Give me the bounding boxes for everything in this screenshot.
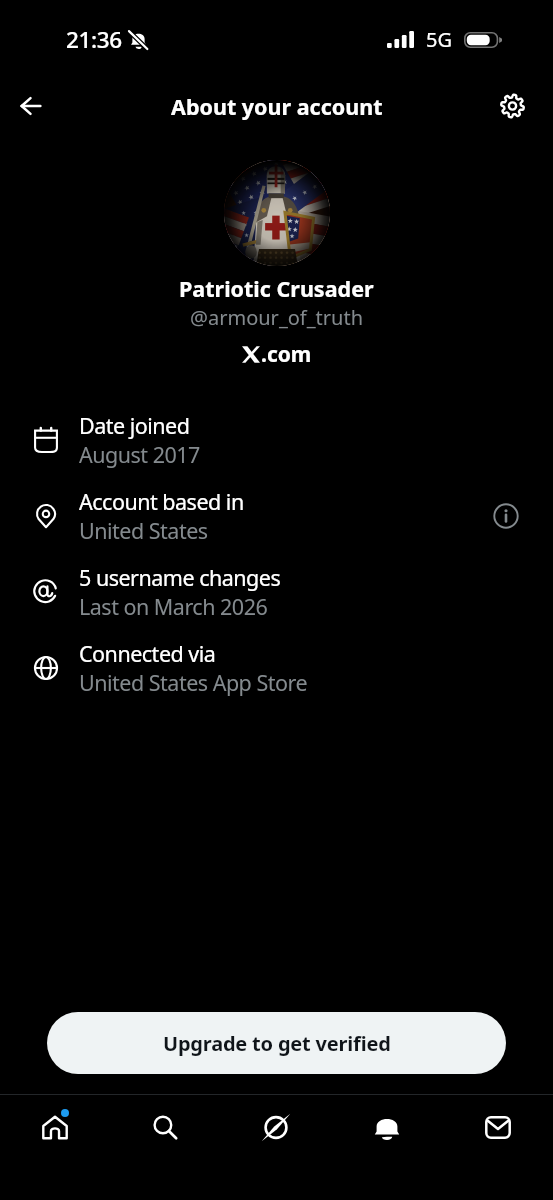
staticText: Patriotic Crusader: [179, 274, 374, 303]
button[interactable]: Upgrade to get verified: [47, 1012, 506, 1074]
button[interactable]: 5 username changes: [0, 563, 553, 639]
staticText: @armour_of_truth: [190, 304, 364, 331]
button[interactable]: Search: [110, 1098, 220, 1156]
button[interactable]: Home: [0, 1098, 110, 1156]
staticText: United States: [79, 516, 208, 545]
staticText: Date joined: [79, 411, 190, 440]
button[interactable]: Account based in: [0, 487, 553, 563]
button[interactable]: Grok: [220, 1098, 331, 1156]
staticText: Upgrade to get verified: [163, 1030, 391, 1057]
button[interactable]: Messages: [442, 1098, 553, 1156]
staticText: Last on March 2026: [79, 592, 268, 621]
button[interactable]: Settings: [489, 83, 535, 129]
staticText: Account based in: [79, 487, 244, 516]
staticText: .com: [261, 340, 312, 369]
staticText: 21:36: [66, 24, 122, 55]
button[interactable]: Back: [6, 82, 54, 130]
staticText: Connected via: [79, 639, 216, 668]
button[interactable]: Date joined: [0, 411, 553, 487]
button[interactable]: Connected via: [0, 639, 553, 715]
staticText: United States App Store: [79, 668, 308, 697]
staticText: 5G: [426, 26, 452, 53]
staticText: August 2017: [79, 440, 200, 469]
button[interactable]: More info: [486, 496, 526, 536]
staticText: 5 username changes: [79, 563, 281, 592]
staticText: About your account: [171, 92, 383, 121]
button[interactable]: Notifications: [331, 1098, 442, 1156]
